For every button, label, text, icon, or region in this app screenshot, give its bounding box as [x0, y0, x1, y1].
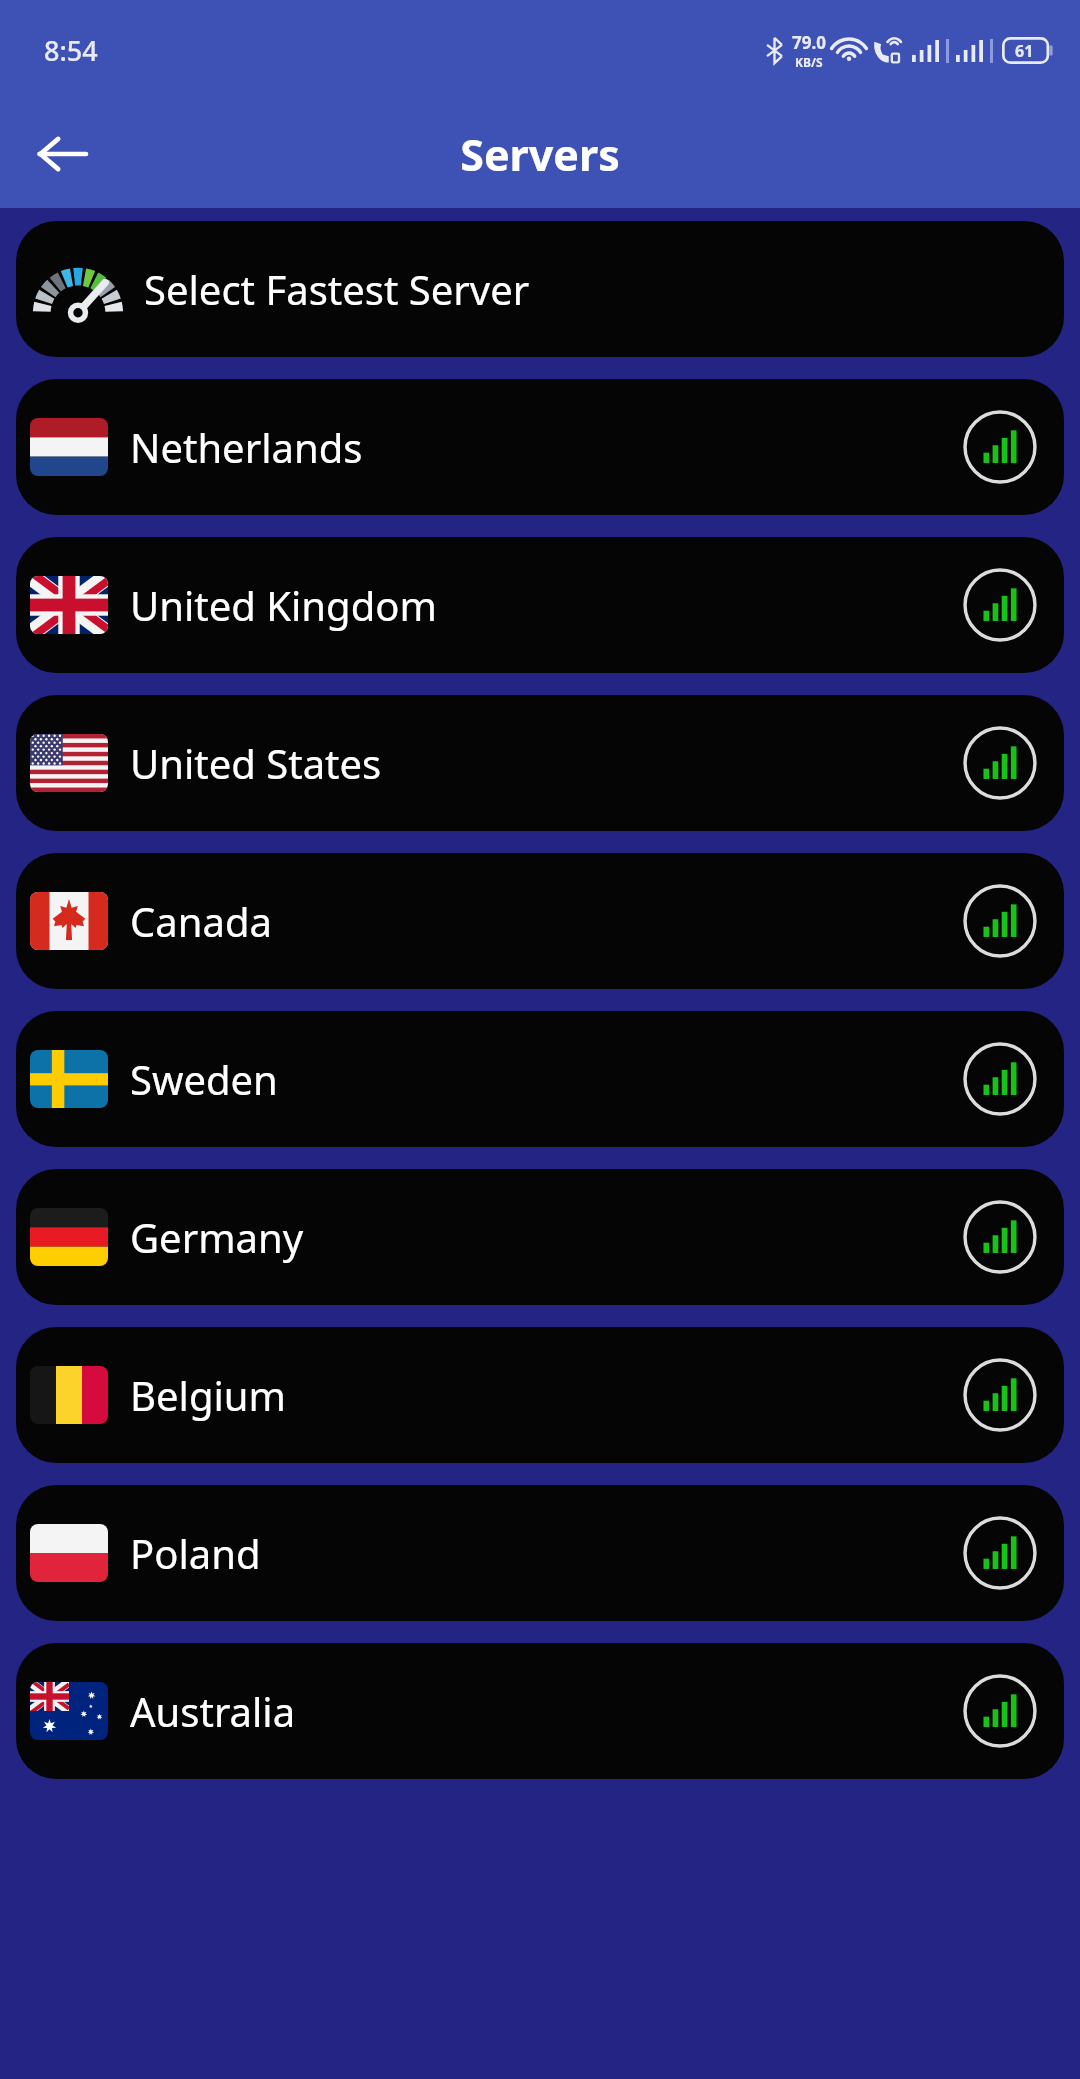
button[interactable]: Signal strength — [958, 1669, 1042, 1753]
button[interactable]: Poland — [16, 1485, 1064, 1621]
staticText: Servers — [460, 125, 620, 184]
button[interactable]: Select Fastest Server — [16, 221, 1064, 357]
button[interactable]: Canada — [16, 853, 1064, 989]
button[interactable]: Signal strength — [958, 1037, 1042, 1121]
button[interactable]: Germany — [16, 1169, 1064, 1305]
button[interactable]: United Kingdom — [16, 537, 1064, 673]
staticText: United Kingdom — [130, 578, 437, 632]
staticText: 61 — [1015, 40, 1034, 62]
staticText: KB/S — [795, 54, 823, 70]
staticText: Belgium — [130, 1368, 286, 1422]
staticText: Poland — [130, 1526, 261, 1580]
button[interactable]: Signal strength — [958, 563, 1042, 647]
staticText: Canada — [130, 894, 272, 948]
button[interactable]: Signal strength — [958, 879, 1042, 963]
button[interactable]: Signal strength — [958, 1195, 1042, 1279]
staticText: Germany — [130, 1210, 304, 1264]
button[interactable]: Netherlands — [16, 379, 1064, 515]
staticText: Netherlands — [130, 420, 363, 474]
staticText: United States — [130, 736, 382, 790]
button[interactable]: Signal strength — [958, 1353, 1042, 1437]
button[interactable]: Belgium — [16, 1327, 1064, 1463]
staticText: 8:54 — [44, 32, 98, 69]
staticText: 79.0 — [792, 31, 826, 54]
button[interactable]: Sweden — [16, 1011, 1064, 1147]
button[interactable]: Signal strength — [958, 405, 1042, 489]
button[interactable]: Australia — [16, 1643, 1064, 1779]
staticText: Sweden — [130, 1052, 278, 1106]
staticText: Australia — [130, 1684, 296, 1738]
button[interactable]: United States — [16, 695, 1064, 831]
button[interactable]: Signal strength — [958, 721, 1042, 805]
staticText: Select Fastest Server — [144, 262, 530, 316]
button[interactable]: Back — [20, 112, 104, 196]
button[interactable]: Signal strength — [958, 1511, 1042, 1595]
